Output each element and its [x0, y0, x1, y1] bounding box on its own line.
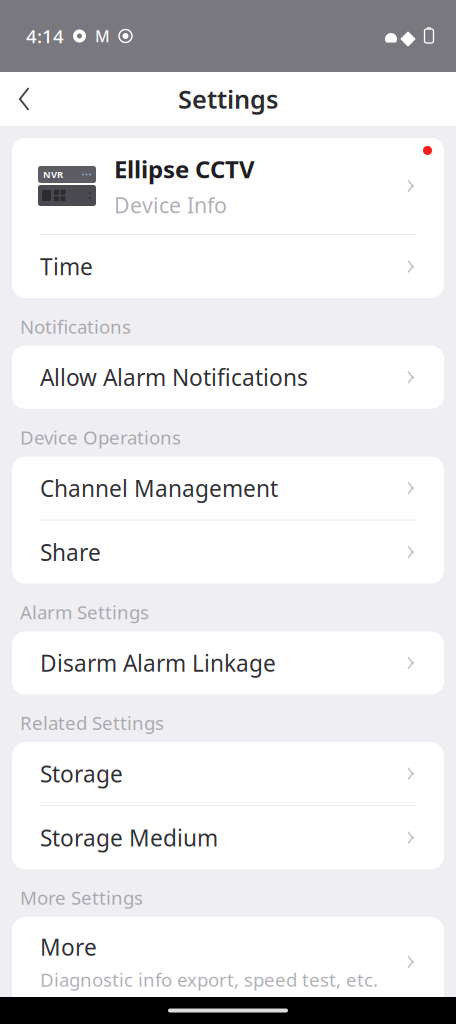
staticText: Device Operations	[20, 425, 181, 450]
button[interactable]: NVR	[12, 138, 444, 234]
staticText: More	[40, 932, 97, 962]
button[interactable]: Back	[0, 73, 48, 125]
staticText: Storage	[40, 759, 123, 789]
button[interactable]: Share	[12, 521, 444, 584]
staticText: More Settings	[20, 885, 143, 910]
button[interactable]: Channel Management	[12, 457, 444, 520]
button[interactable]: Storage Medium	[12, 806, 444, 869]
staticText: Time	[40, 251, 93, 281]
staticText: Channel Management	[40, 473, 278, 503]
staticText: Ellipse CCTV	[114, 153, 255, 185]
staticText: Storage Medium	[40, 823, 218, 853]
staticText: 4:14	[26, 24, 64, 48]
staticText: Settings	[178, 82, 278, 116]
staticText: Diagnostic info export, speed test, etc.	[40, 967, 378, 992]
staticText: Allow Alarm Notifications	[40, 362, 308, 392]
staticText: M	[95, 25, 110, 47]
staticText: Alarm Settings	[20, 600, 149, 624]
staticText: Notifications	[20, 314, 131, 339]
staticText: NVR	[43, 168, 63, 181]
staticText: Related Settings	[20, 710, 164, 735]
button[interactable]: Time	[12, 235, 444, 298]
button[interactable]: More	[12, 917, 444, 1007]
button[interactable]: Allow Alarm Notifications	[12, 346, 444, 409]
staticText: Share	[40, 537, 101, 567]
button[interactable]: Disarm Alarm Linkage	[12, 631, 444, 694]
button[interactable]: Storage	[12, 742, 444, 805]
staticText: Disarm Alarm Linkage	[40, 648, 276, 678]
staticText: Device Info	[114, 191, 227, 219]
